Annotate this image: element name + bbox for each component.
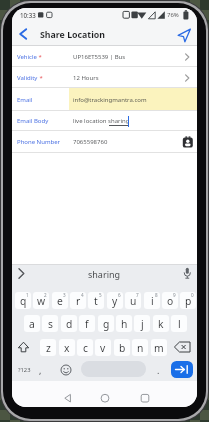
button[interactable]: e: [52, 292, 68, 309]
staticText: ,: [39, 364, 42, 376]
button[interactable]: d: [61, 315, 77, 332]
button[interactable]: [98, 391, 112, 405]
button[interactable]: s: [42, 315, 58, 332]
staticText: Share Location: [40, 29, 106, 41]
staticText: p: [185, 294, 192, 308]
button[interactable]: Validity: [12, 67, 197, 88]
staticText: e: [57, 294, 63, 308]
staticText: j: [141, 317, 144, 331]
staticText: d: [66, 317, 73, 331]
button[interactable]: [60, 391, 74, 405]
button[interactable]: l: [171, 315, 187, 332]
button[interactable]: [175, 26, 193, 44]
button[interactable]: z: [40, 339, 56, 356]
button[interactable]: Email Body: [12, 111, 197, 131]
staticText: o: [167, 294, 174, 308]
button[interactable]: o: [162, 292, 178, 309]
button[interactable]: g: [98, 315, 114, 332]
staticText: 8: [155, 292, 158, 298]
staticText: 3: [63, 292, 66, 298]
button[interactable]: ,: [35, 361, 45, 378]
staticText: c: [83, 341, 88, 355]
button[interactable]: [14, 266, 29, 281]
button[interactable]: b: [114, 339, 130, 356]
button[interactable]: Email: [12, 88, 197, 111]
staticText: v: [100, 341, 106, 355]
button[interactable]: f: [79, 315, 95, 332]
button[interactable]: sharing: [88, 268, 121, 280]
button[interactable]: p: [180, 292, 196, 309]
staticText: .: [157, 364, 160, 376]
staticText: *: [37, 53, 42, 61]
button[interactable]: a: [24, 315, 40, 332]
staticText: t: [94, 294, 98, 308]
staticText: Phone Number: [17, 138, 61, 146]
staticText: g: [103, 317, 110, 331]
staticText: 7065598760: [73, 138, 108, 146]
staticText: 1: [26, 292, 29, 298]
staticText: 10:33: [20, 11, 36, 19]
button[interactable]: x: [59, 339, 75, 356]
button[interactable]: t: [88, 292, 104, 309]
staticText: live location sharing: [73, 117, 130, 125]
button[interactable]: m: [151, 339, 167, 356]
button[interactable]: w: [33, 292, 49, 309]
staticText: r: [76, 294, 81, 308]
button[interactable]: [170, 339, 196, 356]
staticText: n: [137, 341, 144, 355]
staticText: 0: [191, 292, 194, 298]
button[interactable]: [60, 364, 72, 376]
staticText: q: [20, 294, 27, 308]
button[interactable]: v: [95, 339, 111, 356]
button[interactable]: i: [144, 292, 160, 309]
staticText: h: [121, 317, 128, 331]
staticText: 7: [136, 292, 139, 298]
button[interactable]: Vehicle: [12, 46, 197, 67]
staticText: u: [130, 294, 137, 308]
button[interactable]: j: [134, 315, 150, 332]
button[interactable]: [138, 391, 152, 405]
staticText: k: [158, 317, 164, 331]
button[interactable]: .: [153, 361, 164, 378]
button[interactable]: ?123: [14, 361, 35, 378]
staticText: l: [178, 317, 181, 331]
staticText: ?123: [18, 366, 31, 374]
staticText: w: [37, 294, 46, 308]
staticText: s: [48, 317, 53, 331]
staticText: 9: [173, 292, 176, 298]
button[interactable]: r: [70, 292, 86, 309]
staticText: 4: [81, 292, 84, 298]
button[interactable]: h: [116, 315, 132, 332]
staticText: 76%: [167, 11, 179, 19]
staticText: 2: [44, 292, 47, 298]
staticText: a: [29, 317, 35, 331]
staticText: y: [112, 294, 118, 308]
staticText: sharing: [88, 268, 121, 280]
staticText: 12 Hours: [73, 74, 99, 82]
button[interactable]: [13, 339, 37, 356]
button[interactable]: c: [77, 339, 93, 356]
button[interactable]: u: [125, 292, 141, 309]
button[interactable]: k: [153, 315, 169, 332]
staticText: Vehicle: [17, 53, 37, 61]
staticText: f: [85, 317, 89, 331]
staticText: m: [154, 341, 164, 355]
staticText: 5: [99, 292, 102, 298]
staticText: i: [151, 294, 154, 308]
button[interactable]: [181, 267, 194, 280]
staticText: UP16ET5539 | Bus: [73, 53, 126, 61]
button[interactable]: n: [132, 339, 148, 356]
button[interactable]: y: [107, 292, 123, 309]
staticText: Email: [17, 96, 33, 104]
staticText: x: [64, 341, 70, 355]
staticText: 6: [118, 292, 121, 298]
button[interactable]: q: [15, 292, 31, 309]
button[interactable]: [171, 361, 193, 378]
button[interactable]: [81, 361, 146, 377]
staticText: z: [46, 341, 51, 355]
staticText: *: [38, 74, 43, 82]
button[interactable]: Phone Number: [12, 131, 197, 153]
staticText: b: [119, 341, 126, 355]
button[interactable]: [15, 26, 31, 42]
staticText: info@trackingmantra.com: [73, 96, 147, 104]
